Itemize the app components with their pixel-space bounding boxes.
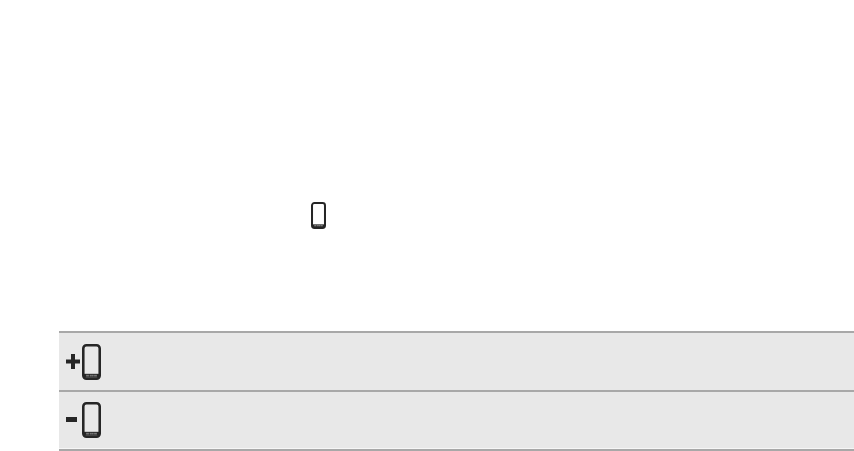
button[interactable]: Device [311, 202, 326, 229]
button[interactable]: Remove device [59, 392, 854, 448]
button[interactable]: Add device [59, 333, 854, 390]
